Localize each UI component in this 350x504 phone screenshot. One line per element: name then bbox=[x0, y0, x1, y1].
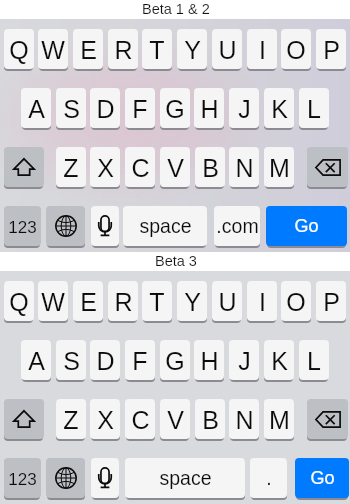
button[interactable]: C bbox=[125, 399, 155, 439]
button[interactable]: O bbox=[281, 281, 311, 321]
staticText: X bbox=[97, 154, 114, 182]
button[interactable]: S bbox=[56, 340, 86, 380]
staticText: I bbox=[259, 36, 266, 64]
button[interactable]: Backspace bbox=[307, 147, 348, 187]
staticText: S bbox=[63, 347, 80, 375]
staticText: L bbox=[307, 347, 321, 375]
button[interactable]: U bbox=[212, 281, 242, 321]
button[interactable]: L bbox=[299, 340, 329, 380]
button[interactable]: T bbox=[142, 281, 172, 321]
button[interactable]: A bbox=[21, 340, 51, 380]
staticText: I bbox=[259, 288, 266, 316]
button[interactable]: M bbox=[264, 147, 294, 187]
staticText: W bbox=[41, 36, 65, 64]
button[interactable]: .com bbox=[214, 206, 260, 246]
button[interactable]: Dictate bbox=[91, 206, 119, 246]
button[interactable]: O bbox=[281, 29, 311, 69]
staticText: A bbox=[28, 347, 45, 375]
staticText: U bbox=[218, 36, 237, 64]
button[interactable]: Q bbox=[4, 29, 34, 69]
button[interactable]: Backspace bbox=[307, 399, 348, 439]
button[interactable]: H bbox=[194, 88, 224, 128]
staticText: N bbox=[235, 406, 254, 434]
button[interactable]: J bbox=[229, 88, 259, 128]
button[interactable]: 123 bbox=[4, 458, 41, 498]
button[interactable]: B bbox=[195, 399, 225, 439]
button[interactable]: space bbox=[125, 458, 245, 498]
button[interactable]: Shift bbox=[4, 399, 44, 439]
button[interactable]: Shift bbox=[4, 147, 44, 187]
staticText: Z bbox=[63, 154, 79, 182]
button[interactable]: Next keyboard bbox=[46, 206, 85, 246]
button[interactable]: P bbox=[316, 29, 346, 69]
staticText: W bbox=[41, 288, 65, 316]
staticText: 123 bbox=[8, 218, 37, 237]
staticText: K bbox=[271, 95, 288, 123]
button[interactable]: I bbox=[247, 29, 277, 69]
staticText: D bbox=[96, 347, 115, 375]
button[interactable]: C bbox=[125, 147, 155, 187]
button[interactable]: Z bbox=[56, 147, 86, 187]
staticText: Z bbox=[63, 406, 79, 434]
button[interactable]: K bbox=[264, 88, 294, 128]
button[interactable]: V bbox=[160, 399, 190, 439]
staticText: G bbox=[165, 95, 185, 123]
button[interactable]: L bbox=[299, 88, 329, 128]
button[interactable]: Y bbox=[177, 281, 207, 321]
button[interactable]: P bbox=[316, 281, 346, 321]
button[interactable]: F bbox=[125, 340, 155, 380]
staticText: R bbox=[114, 36, 133, 64]
button[interactable]: X bbox=[90, 399, 120, 439]
staticText: H bbox=[200, 347, 219, 375]
staticText: D bbox=[96, 95, 115, 123]
staticText: U bbox=[218, 288, 237, 316]
button[interactable]: K bbox=[264, 340, 294, 380]
button[interactable]: E bbox=[73, 281, 103, 321]
button[interactable]: Next keyboard bbox=[46, 458, 85, 498]
staticText: X bbox=[97, 406, 114, 434]
button[interactable]: Go bbox=[266, 206, 347, 246]
button[interactable]: E bbox=[73, 29, 103, 69]
button[interactable]: space bbox=[123, 206, 207, 246]
staticText: C bbox=[131, 154, 150, 182]
staticText: P bbox=[323, 36, 340, 64]
button[interactable]: R bbox=[108, 29, 138, 69]
button[interactable]: A bbox=[21, 88, 51, 128]
button[interactable]: G bbox=[160, 88, 190, 128]
button[interactable]: . bbox=[250, 458, 287, 498]
button[interactable]: D bbox=[90, 340, 120, 380]
button[interactable]: W bbox=[38, 281, 68, 321]
staticText: O bbox=[286, 36, 306, 64]
button[interactable]: Go bbox=[295, 458, 349, 498]
button[interactable]: Dictate bbox=[91, 458, 119, 498]
staticText: E bbox=[80, 36, 97, 64]
staticText: C bbox=[131, 406, 150, 434]
button[interactable]: S bbox=[56, 88, 86, 128]
button[interactable]: W bbox=[38, 29, 68, 69]
button[interactable]: Y bbox=[177, 29, 207, 69]
button[interactable]: N bbox=[229, 399, 259, 439]
button[interactable]: B bbox=[195, 147, 225, 187]
button[interactable]: 123 bbox=[4, 206, 41, 246]
button[interactable]: F bbox=[125, 88, 155, 128]
button[interactable]: Q bbox=[4, 281, 34, 321]
button[interactable]: U bbox=[212, 29, 242, 69]
staticText: S bbox=[63, 95, 80, 123]
button[interactable]: I bbox=[247, 281, 277, 321]
button[interactable]: V bbox=[160, 147, 190, 187]
staticText: Go bbox=[310, 468, 335, 488]
staticText: Q bbox=[9, 288, 29, 316]
button[interactable]: Z bbox=[56, 399, 86, 439]
staticText: O bbox=[286, 288, 306, 316]
staticText: Y bbox=[184, 288, 201, 316]
button[interactable]: R bbox=[108, 281, 138, 321]
button[interactable]: N bbox=[229, 147, 259, 187]
button[interactable]: H bbox=[194, 340, 224, 380]
button[interactable]: G bbox=[160, 340, 190, 380]
staticText: T bbox=[149, 36, 165, 64]
button[interactable]: J bbox=[229, 340, 259, 380]
button[interactable]: D bbox=[90, 88, 120, 128]
button[interactable]: T bbox=[142, 29, 172, 69]
button[interactable]: X bbox=[90, 147, 120, 187]
button[interactable]: M bbox=[264, 399, 294, 439]
